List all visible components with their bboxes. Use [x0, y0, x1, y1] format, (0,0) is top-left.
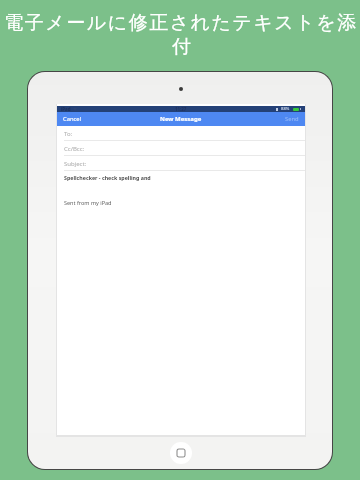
staticText: Sent from my iPad [64, 199, 112, 206]
button[interactable]: Home [170, 442, 192, 464]
button[interactable]: Spellchecker - check spelling and [57, 171, 305, 435]
button[interactable]: Cancel [57, 112, 107, 126]
staticText: 電子メールに修正されたテキストを添 [4, 11, 358, 35]
button[interactable]: Send [255, 112, 305, 126]
staticText: 付 [172, 35, 191, 59]
staticText: Spellchecker - check spelling and [64, 174, 151, 181]
staticText: New Message [160, 115, 202, 123]
staticText: iPad [61, 106, 71, 112]
staticText: 11:27 [175, 106, 187, 112]
staticText: Send [285, 115, 299, 123]
staticText: Subject: [64, 160, 87, 168]
button[interactable]: Subject: [57, 156, 305, 171]
staticText: Cc/Bcc: [64, 145, 85, 153]
staticText: 88% [281, 106, 290, 112]
button[interactable]: Cc/Bcc: [57, 141, 305, 156]
staticText: Cancel [63, 115, 82, 123]
staticText: To: [64, 130, 73, 138]
button[interactable]: To: [57, 126, 305, 141]
